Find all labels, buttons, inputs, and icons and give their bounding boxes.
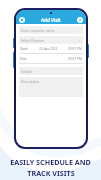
button[interactable]: Select Purpose — [19, 36, 83, 44]
button[interactable]: Start: — [19, 46, 83, 52]
staticText: Enter customer name — [21, 28, 55, 32]
staticText: Description — [21, 79, 39, 83]
staticText: 09:57 PM — [68, 47, 82, 51]
staticText: Add Visit — [41, 17, 61, 23]
button[interactable]: Subject — [19, 67, 83, 75]
button[interactable]: Enter customer name — [19, 26, 83, 34]
staticText: EASILY SCHEDULE AND — [10, 157, 91, 167]
staticText: Select Purpose — [21, 38, 44, 42]
button[interactable]: Close — [19, 17, 25, 23]
staticText: Start: — [20, 47, 29, 51]
staticText: 09:57 PM — [68, 57, 82, 61]
button[interactable]: Save — [77, 17, 83, 23]
button[interactable]: Description — [19, 77, 83, 97]
staticText: TRACK VISITS — [27, 168, 75, 178]
button[interactable]: End: — [19, 56, 83, 62]
staticText: End: — [20, 57, 27, 61]
staticText: 25-Apr-2022 — [39, 47, 58, 51]
staticText: Subject — [21, 69, 33, 73]
